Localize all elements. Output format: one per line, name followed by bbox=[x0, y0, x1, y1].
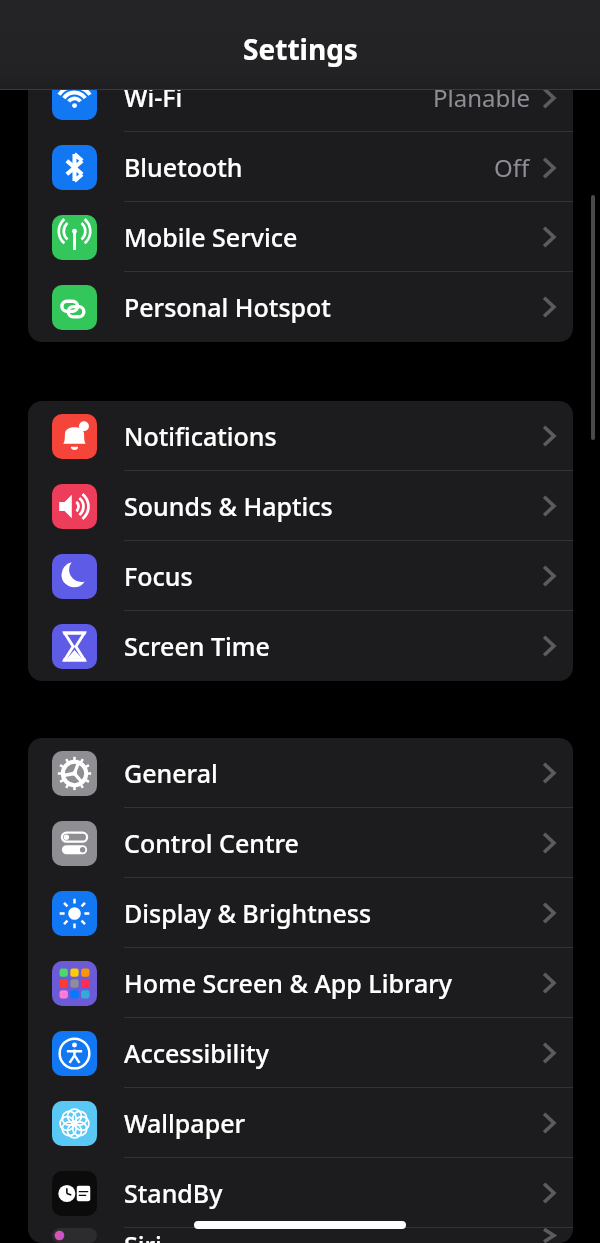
button[interactable]: Screen Time bbox=[28, 611, 573, 681]
button[interactable]: Wallpaper bbox=[28, 1088, 573, 1158]
staticText: StandBy bbox=[124, 1176, 223, 1210]
staticText: Wallpaper bbox=[124, 1106, 246, 1140]
staticText: Display & Brightness bbox=[124, 896, 372, 930]
staticText: Control Centre bbox=[124, 826, 299, 860]
button[interactable]: Focus bbox=[28, 541, 573, 611]
button[interactable]: StandBy bbox=[28, 1158, 573, 1228]
button[interactable]: Wi-Fi bbox=[28, 62, 573, 132]
button[interactable]: Home Screen & App Library bbox=[28, 948, 573, 1018]
staticText: Off bbox=[494, 151, 530, 184]
staticText: Bluetooth bbox=[124, 150, 243, 184]
staticText: General bbox=[124, 756, 218, 790]
staticText: Sounds & Haptics bbox=[124, 489, 333, 523]
button[interactable]: Siri bbox=[28, 1228, 573, 1243]
button[interactable]: Display & Brightness bbox=[28, 878, 573, 948]
button[interactable]: Bluetooth bbox=[28, 132, 573, 202]
staticText: Focus bbox=[124, 559, 193, 593]
staticText: Home Screen & App Library bbox=[124, 966, 453, 1000]
button[interactable]: Mobile Service bbox=[28, 202, 573, 272]
button[interactable]: General bbox=[28, 738, 573, 808]
staticText: Accessibility bbox=[124, 1036, 269, 1070]
staticText: Personal Hotspot bbox=[124, 290, 331, 324]
staticText: Planable bbox=[433, 81, 530, 114]
staticText: Wi-Fi bbox=[124, 80, 183, 114]
staticText: Notifications bbox=[124, 419, 277, 453]
button[interactable]: Notifications bbox=[28, 401, 573, 471]
staticText: Siri bbox=[124, 1228, 162, 1243]
staticText: Screen Time bbox=[124, 629, 270, 663]
button[interactable]: Personal Hotspot bbox=[28, 272, 573, 342]
button[interactable]: Control Centre bbox=[28, 808, 573, 878]
staticText: Mobile Service bbox=[124, 220, 298, 254]
button[interactable]: Sounds & Haptics bbox=[28, 471, 573, 541]
button[interactable]: Accessibility bbox=[28, 1018, 573, 1088]
staticText: Settings bbox=[243, 30, 358, 68]
